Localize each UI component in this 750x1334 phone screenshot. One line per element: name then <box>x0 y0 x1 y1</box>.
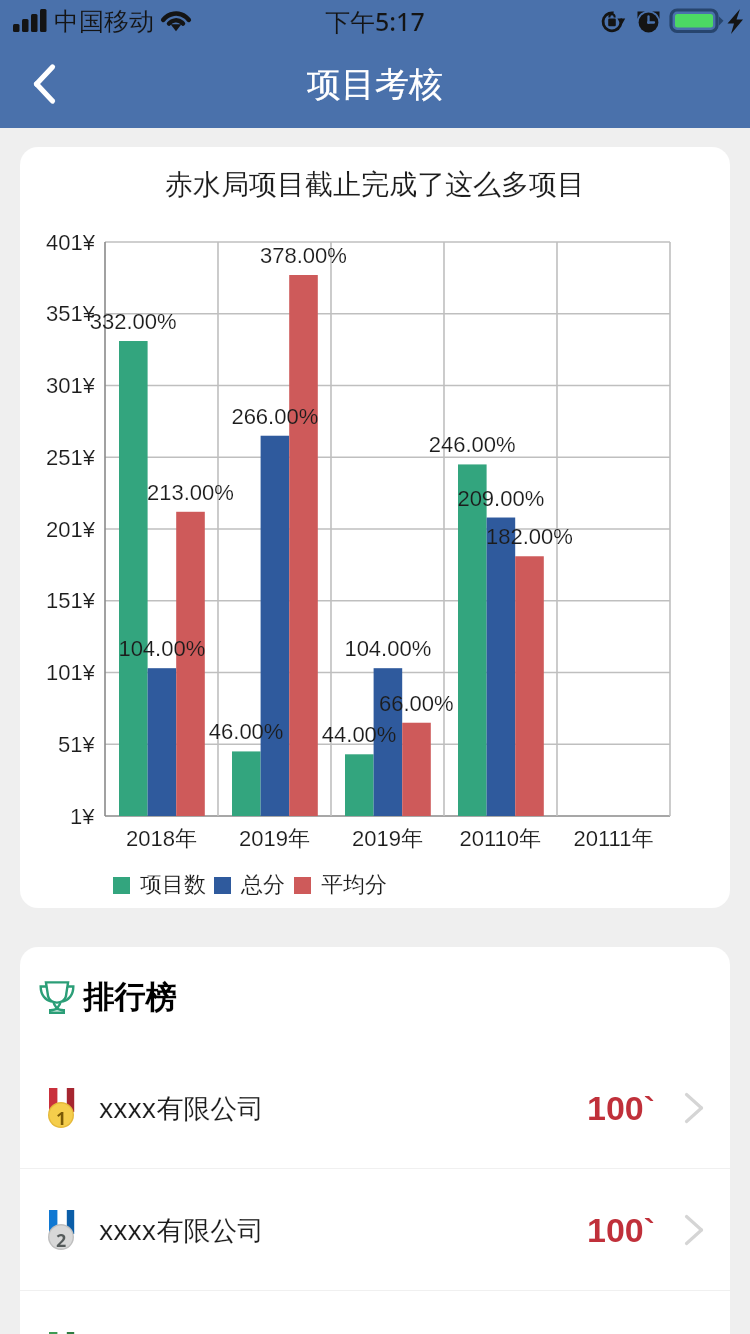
staticText: 2 <box>56 1228 67 1253</box>
staticText: 项目考核 <box>307 63 443 106</box>
staticText: 项目数 <box>140 871 206 899</box>
other: Details <box>685 1215 703 1245</box>
staticText: 1 <box>56 1106 67 1131</box>
staticText: 100` <box>587 1089 656 1127</box>
staticText: 平均分 <box>321 871 387 899</box>
staticText: 排行榜 <box>83 978 176 1017</box>
other: Details <box>685 1093 703 1123</box>
staticText: xxxx有限公司 <box>99 1211 265 1248</box>
staticText: 中国移动 <box>54 6 154 37</box>
staticText: 下午5:17 <box>325 4 425 38</box>
button[interactable]: 2 <box>20 1169 730 1290</box>
button[interactable]: Back <box>0 44 80 128</box>
staticText: 赤水局项目截止完成了这么多项目 <box>20 167 730 202</box>
staticText: 100` <box>587 1211 656 1249</box>
button[interactable]: 1 <box>20 1047 730 1168</box>
staticText: xxxx有限公司 <box>99 1089 265 1126</box>
button[interactable]: 3 <box>20 1291 730 1334</box>
staticText: 总分 <box>241 871 285 899</box>
